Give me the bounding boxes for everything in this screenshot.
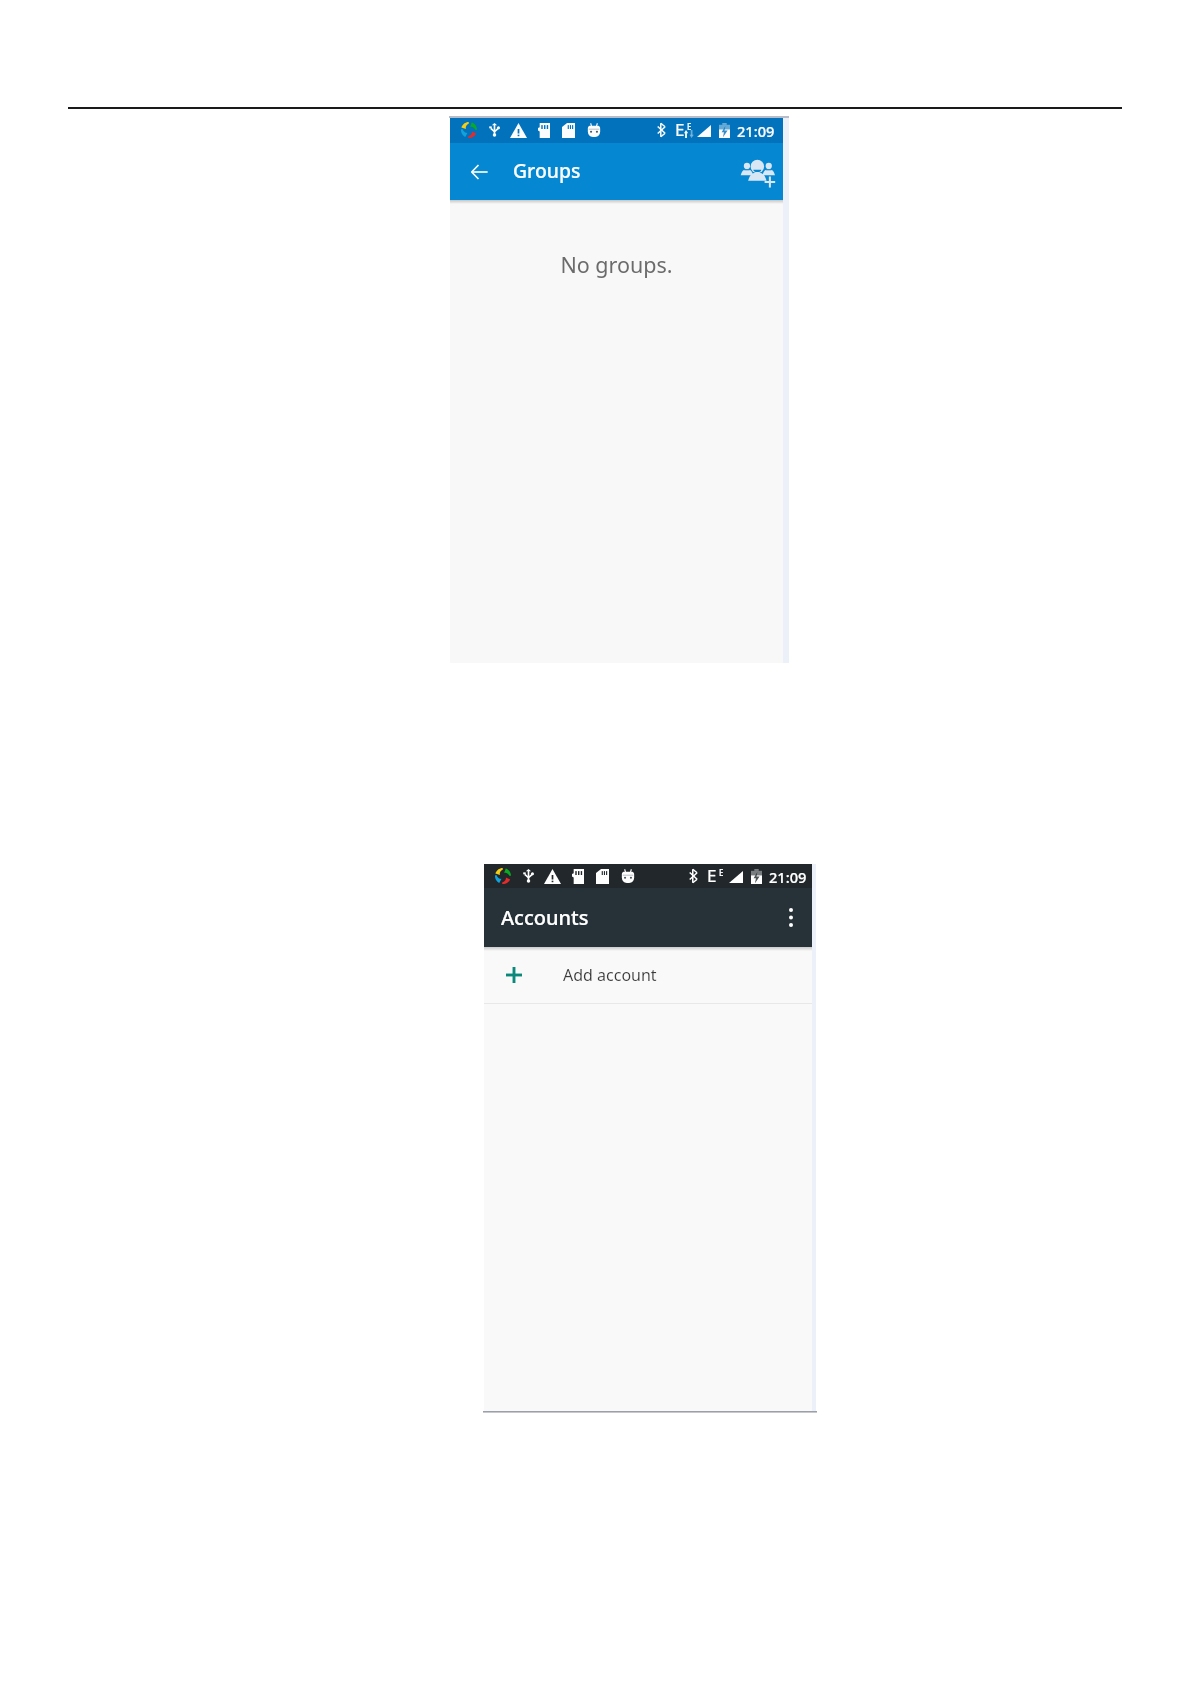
button[interactable]: Back xyxy=(461,154,497,190)
staticText: 21:09 xyxy=(769,867,807,887)
staticText: 21:09 xyxy=(737,121,775,141)
staticText: E xyxy=(707,864,717,887)
staticText: E xyxy=(687,121,692,132)
staticText: E xyxy=(675,118,685,141)
button[interactable]: More options xyxy=(768,895,813,940)
button[interactable]: Add account xyxy=(484,947,812,1003)
staticText: Accounts xyxy=(501,904,589,931)
staticText: Groups xyxy=(513,157,581,183)
staticText: Add account xyxy=(563,964,657,986)
staticText: E xyxy=(719,867,724,878)
button[interactable]: Add group xyxy=(728,150,776,196)
staticText: No groups. xyxy=(450,250,783,279)
